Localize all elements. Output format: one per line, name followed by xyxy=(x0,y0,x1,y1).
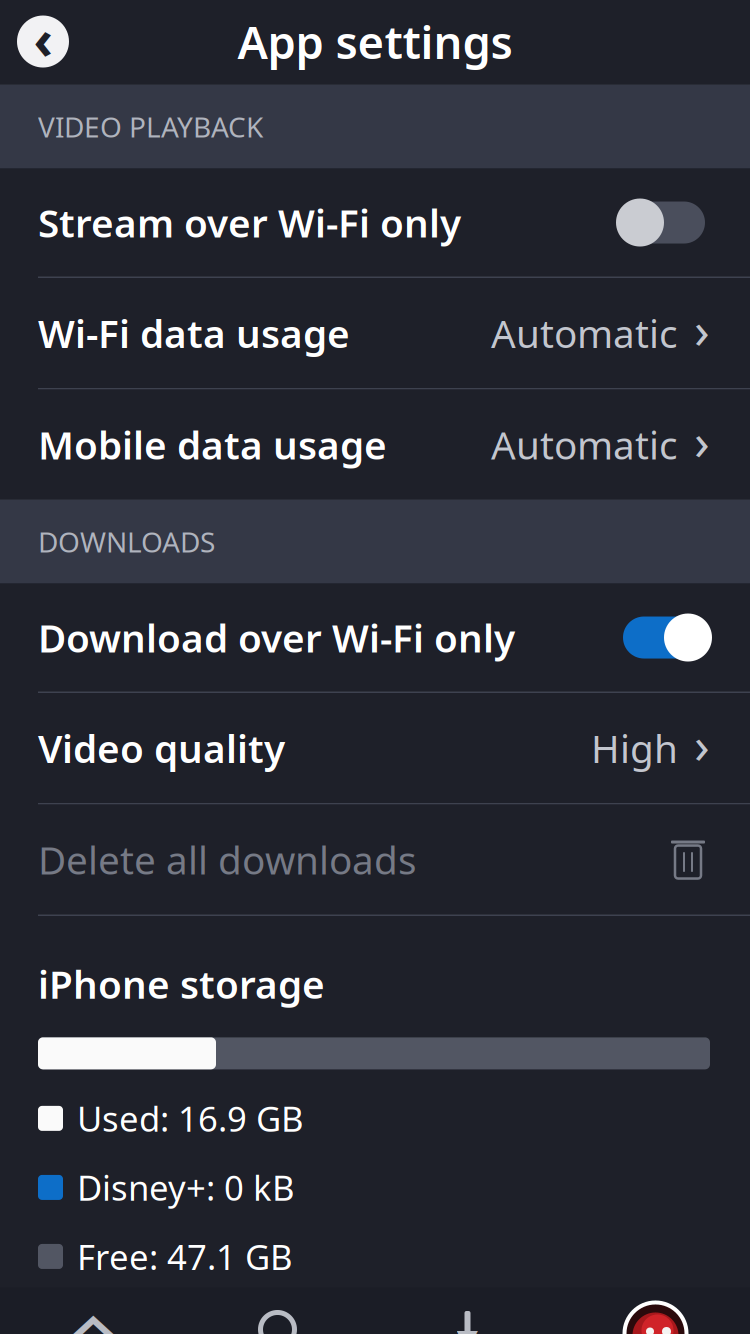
staticText: › xyxy=(694,407,710,474)
staticText: Stream over Wi-Fi only xyxy=(38,197,461,248)
staticText: ▼ xyxy=(456,1323,478,1334)
staticText: Automatic xyxy=(491,419,678,470)
staticText: VIDEO PLAYBACK xyxy=(38,108,263,145)
staticText: DOWNLOADS xyxy=(38,523,215,560)
button[interactable]: Profile xyxy=(561,1287,750,1334)
staticText: Download over Wi-Fi only xyxy=(38,612,515,663)
staticText: Mobile data usage xyxy=(38,419,387,470)
staticText: ‹ xyxy=(33,3,52,74)
staticText: High xyxy=(591,722,678,774)
staticText: iPhone storage xyxy=(38,958,325,1009)
button[interactable]: Wi-Fi data usage xyxy=(0,278,750,388)
staticText: App settings xyxy=(237,11,512,72)
staticText: Delete all downloads xyxy=(38,834,417,885)
staticText: Video quality xyxy=(38,722,285,774)
button[interactable]: Search xyxy=(187,1287,374,1334)
button[interactable]: Video quality xyxy=(0,693,750,803)
button[interactable]: Back xyxy=(12,10,74,72)
staticText: Used: 16.9 GB xyxy=(77,1095,304,1141)
button[interactable]: Stream over Wi-Fi only xyxy=(0,168,750,276)
staticText: Free: 47.1 GB xyxy=(77,1233,293,1279)
staticText: Automatic xyxy=(491,307,678,359)
button[interactable]: Delete all downloads xyxy=(0,804,750,914)
button[interactable]: Downloads xyxy=(374,1287,561,1334)
staticText: Disney+: 0 kB xyxy=(77,1164,295,1210)
staticText: › xyxy=(694,295,710,363)
staticText: Wi-Fi data usage xyxy=(38,307,350,359)
button[interactable]: Download over Wi-Fi only xyxy=(0,583,750,691)
button[interactable]: Mobile data usage xyxy=(0,389,750,499)
button[interactable]: Home xyxy=(0,1287,187,1334)
staticText: ⌂ xyxy=(67,1293,119,1334)
staticText: › xyxy=(694,710,710,778)
